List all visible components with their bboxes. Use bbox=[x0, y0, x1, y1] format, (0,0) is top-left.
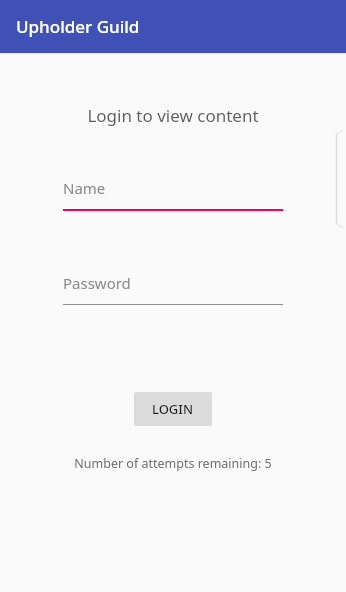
staticText: Number of attempts remaining: 5 bbox=[74, 455, 272, 472]
button[interactable]: Name input field bbox=[63, 178, 283, 211]
staticText: Upholder Guild bbox=[16, 15, 140, 38]
staticText: LOGIN bbox=[152, 400, 194, 418]
staticText: Login to view content bbox=[87, 104, 259, 126]
staticText: Name bbox=[63, 178, 106, 198]
staticText: Password bbox=[63, 273, 131, 293]
button[interactable]: LOGIN bbox=[134, 392, 212, 426]
button[interactable]: Password input field bbox=[63, 273, 283, 305]
